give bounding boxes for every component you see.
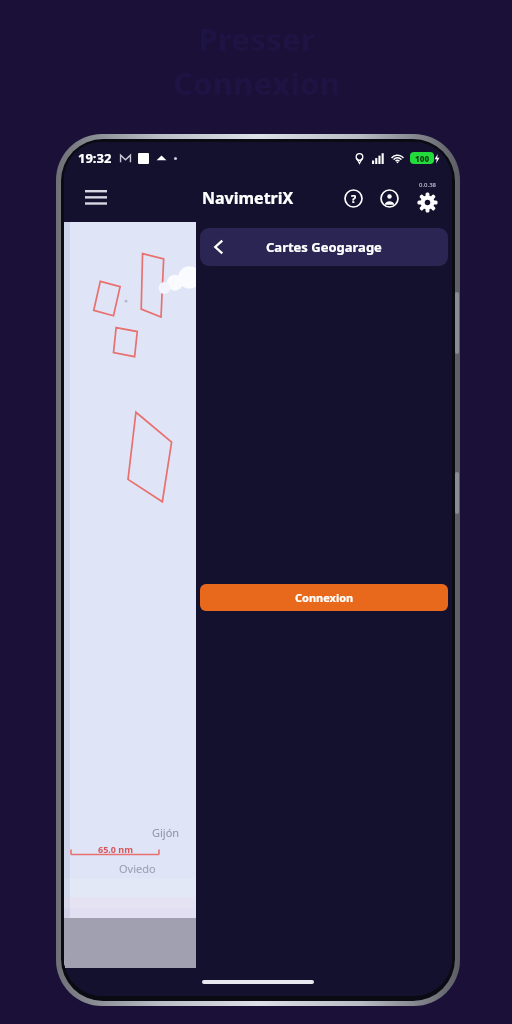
staticText: Gijón xyxy=(152,825,180,840)
staticText: Presser xyxy=(198,18,315,60)
staticText: 19:32 xyxy=(78,149,112,167)
staticText: Cartes Geogarage xyxy=(266,238,382,256)
button[interactable]: Cartes Geogarage xyxy=(200,228,448,266)
staticText: NavimetriX xyxy=(202,187,294,209)
button[interactable]: Menu xyxy=(76,178,116,218)
staticText: Connexion xyxy=(173,62,340,104)
button[interactable]: Settings xyxy=(408,179,446,217)
button[interactable]: Help xyxy=(336,181,370,215)
staticText: ? xyxy=(351,191,357,206)
button[interactable]: Connexion xyxy=(200,584,448,611)
staticText: 100 xyxy=(415,153,430,164)
staticText: 0.0.38 xyxy=(419,181,436,189)
button[interactable]: Account xyxy=(372,181,406,215)
staticText: 65.0 nm xyxy=(98,843,133,855)
staticText: Oviedo xyxy=(119,861,156,876)
staticText: Connexion xyxy=(295,590,354,605)
